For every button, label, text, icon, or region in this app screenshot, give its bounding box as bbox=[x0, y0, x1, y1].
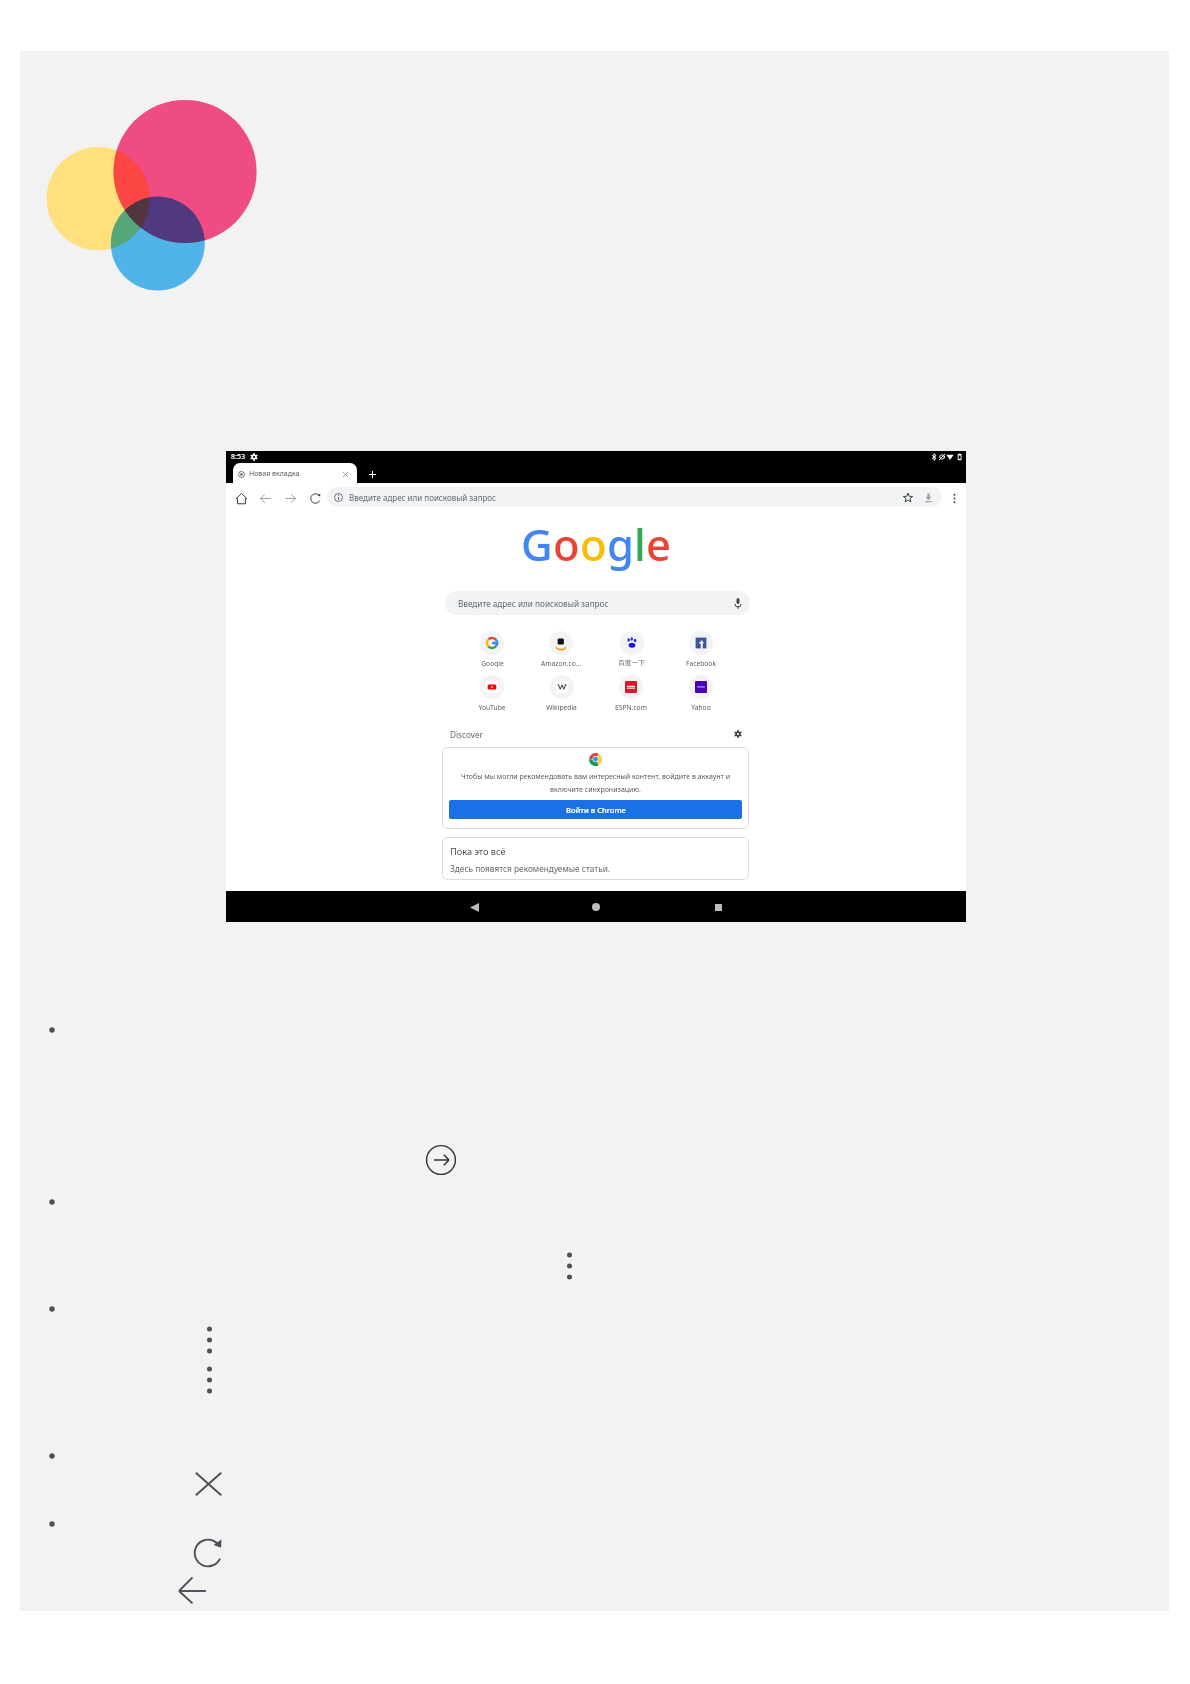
button[interactable]: Discover settings bbox=[730, 726, 746, 742]
button[interactable]: Введите адрес или поисковый запрос bbox=[327, 487, 942, 507]
button[interactable]: Next bbox=[425, 1144, 457, 1176]
button[interactable]: More options bbox=[946, 490, 962, 506]
button[interactable]: Close tab bbox=[339, 468, 351, 480]
staticText: Новая вкладка bbox=[249, 469, 300, 479]
staticText: Здесь появятся рекомендуемые статьи. bbox=[450, 863, 611, 874]
staticText: ESPN.com bbox=[615, 703, 647, 711]
button[interactable]: More options bbox=[560, 1254, 578, 1278]
button[interactable]: Recent apps bbox=[703, 892, 733, 922]
staticText: g bbox=[607, 514, 634, 573]
button[interactable]: More options bbox=[200, 1328, 218, 1352]
button[interactable]: Voice search bbox=[730, 595, 746, 611]
button[interactable]: Forward bbox=[282, 490, 298, 506]
button[interactable]: Новая вкладка bbox=[233, 463, 357, 484]
button[interactable]: Reload bbox=[307, 490, 323, 506]
staticText: Google bbox=[481, 659, 504, 667]
button[interactable]: More options bbox=[200, 1368, 218, 1392]
staticText: o bbox=[553, 514, 580, 573]
button[interactable]: Amazon.co… bbox=[535, 631, 587, 667]
button[interactable]: Google bbox=[466, 631, 518, 667]
button[interactable]: 百度一下 bbox=[605, 631, 657, 667]
button[interactable]: Facebook bbox=[675, 631, 727, 667]
button[interactable]: Введите адрес или поисковый запрос bbox=[445, 591, 750, 615]
staticText: Введите адрес или поисковый запрос bbox=[349, 492, 497, 503]
button[interactable]: Reload bbox=[192, 1537, 224, 1569]
button[interactable]: Чтобы мы могли рекомендовать вам интерес… bbox=[442, 747, 749, 829]
button[interactable]: ESPN.com bbox=[605, 675, 657, 711]
staticText: Чтобы мы могли рекомендовать вам интерес… bbox=[453, 772, 738, 794]
staticText: o bbox=[580, 514, 607, 573]
button[interactable]: Downloads bbox=[921, 490, 936, 505]
staticText: Пока это всё bbox=[450, 845, 506, 858]
button[interactable]: Yahoo bbox=[675, 675, 727, 711]
staticText: l bbox=[634, 514, 646, 573]
staticText: 百度一下 bbox=[618, 659, 645, 667]
staticText: Wikipedia bbox=[546, 703, 577, 711]
staticText: e bbox=[646, 514, 671, 573]
button[interactable]: Back bbox=[178, 1576, 208, 1606]
button[interactable]: Back bbox=[459, 892, 489, 922]
staticText: Facebook bbox=[686, 659, 716, 667]
staticText: Yahoo bbox=[691, 703, 711, 711]
button[interactable]: Bookmark bbox=[900, 490, 915, 505]
button[interactable]: Wikipedia bbox=[535, 675, 587, 711]
button[interactable]: Пока это всё bbox=[442, 837, 749, 880]
staticText: Войти в Chrome bbox=[566, 805, 626, 815]
button[interactable]: Home bbox=[233, 490, 249, 506]
staticText: G bbox=[521, 514, 553, 573]
button[interactable]: YouTube bbox=[466, 675, 518, 711]
button[interactable]: New tab bbox=[365, 467, 379, 481]
staticText: 8:53 bbox=[231, 452, 245, 462]
button[interactable]: Close bbox=[193, 1470, 223, 1498]
button[interactable]: Home bbox=[581, 892, 611, 922]
staticText: Введите адрес или поисковый запрос bbox=[458, 598, 609, 609]
button[interactable]: Войти в Chrome bbox=[449, 800, 742, 819]
button[interactable]: Back bbox=[257, 490, 273, 506]
staticText: YouTube bbox=[478, 703, 506, 711]
staticText: Discover bbox=[450, 729, 483, 740]
staticText: Amazon.co… bbox=[541, 659, 581, 667]
